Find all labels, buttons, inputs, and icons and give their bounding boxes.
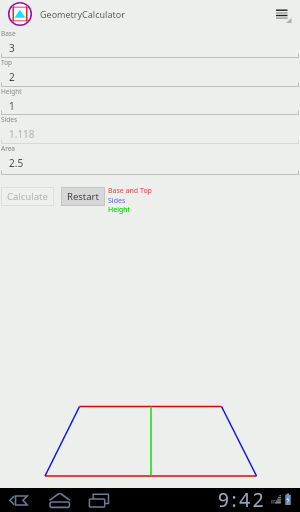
staticText: Base [1,29,16,38]
staticText: Top [1,58,13,67]
staticText: Base and Top [108,186,152,196]
staticText: Height [1,87,22,96]
button[interactable]: Back [2,488,38,512]
button[interactable]: More options [274,0,300,26]
button[interactable]: Restart [61,187,105,206]
button[interactable]: App icon [8,2,32,26]
staticText: 1 [9,99,15,113]
staticText: Sides [1,115,18,124]
staticText: 2 [9,70,15,84]
staticText: 2.5 [9,156,24,170]
button[interactable]: Base [0,28,300,58]
staticText: Sides [108,196,126,206]
button[interactable]: Calculate [1,187,54,206]
button[interactable]: Home [45,488,75,512]
button[interactable]: Top [0,57,300,87]
staticText: GeometryCalculator [40,8,125,20]
button[interactable]: Area [0,143,300,175]
staticText: Calculate [7,190,48,203]
button[interactable]: Sides [0,114,300,144]
staticText: Restart [67,190,99,203]
staticText: Area [1,144,16,153]
staticText: 3 [9,41,15,55]
button[interactable]: Height [0,86,300,115]
staticText: Height [108,205,131,215]
staticText: 9:42 [218,487,267,511]
button[interactable]: Recent apps [85,488,115,512]
staticText: 1.118 [9,127,35,141]
other: Signal and battery status [266,488,296,512]
